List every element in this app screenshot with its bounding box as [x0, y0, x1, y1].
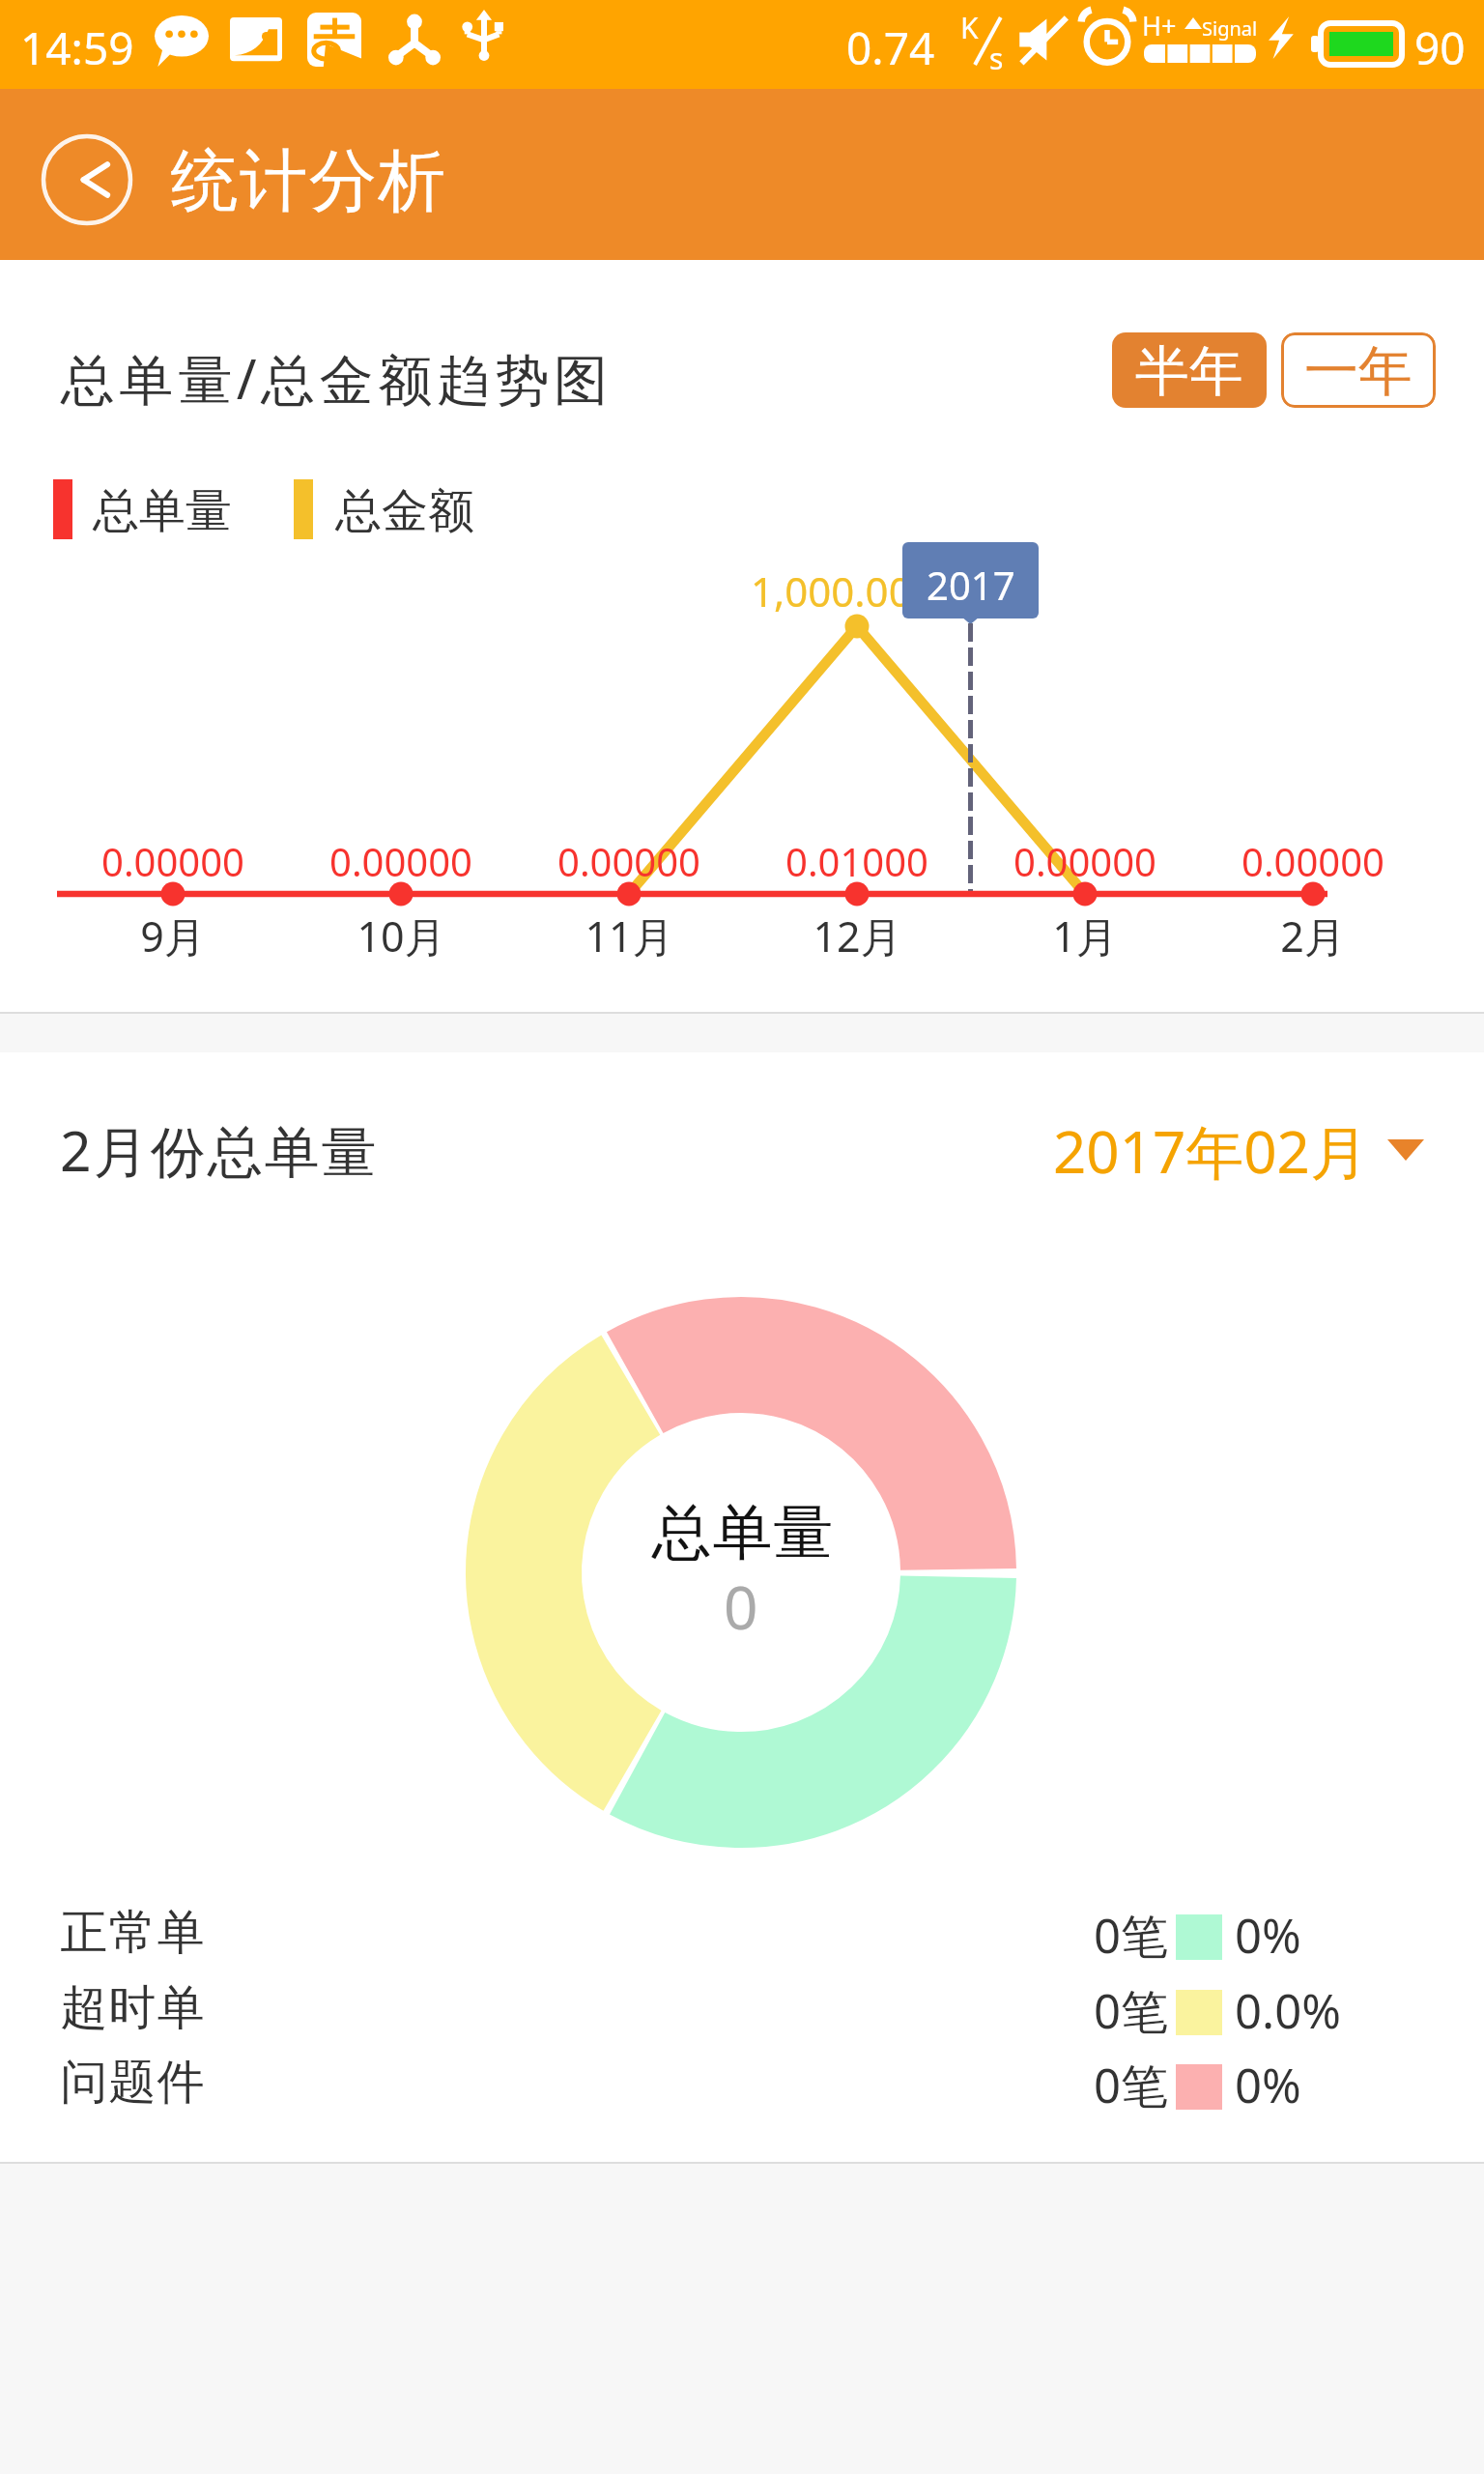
- staticText: 正常单: [60, 1903, 205, 1963]
- staticText: 0笔: [1094, 2053, 1169, 2117]
- staticText: 2月: [1280, 907, 1346, 964]
- staticText: 总单量: [651, 1495, 834, 1570]
- staticText: 0.00000: [101, 835, 244, 887]
- button[interactable]: 超时单: [39, 1972, 1411, 2044]
- staticText: 0: [724, 1566, 758, 1647]
- button[interactable]: 2017年02月: [1053, 1113, 1424, 1193]
- button[interactable]: 半年: [1112, 332, 1267, 408]
- button[interactable]: 正常单: [39, 1897, 1411, 1969]
- staticText: 0笔: [1094, 1903, 1169, 1968]
- staticText: H+: [1142, 8, 1177, 43]
- staticText: s: [989, 39, 1004, 78]
- staticText: 2017: [927, 559, 1015, 611]
- staticText: 0.01000: [785, 835, 928, 887]
- staticText: 1月: [1052, 907, 1118, 964]
- staticText: 半年: [1135, 337, 1243, 406]
- staticText: 0.00000: [1013, 835, 1156, 887]
- staticText: 问题件: [60, 2053, 205, 2113]
- staticText: 0%: [1235, 1903, 1301, 1968]
- staticText: 总金额: [335, 482, 474, 540]
- staticText: 10月: [357, 907, 446, 964]
- staticText: Signal: [1202, 15, 1258, 42]
- staticText: 9月: [140, 907, 206, 964]
- staticText: 0%: [1235, 2053, 1301, 2117]
- staticText: 0.0%: [1235, 1978, 1341, 2043]
- staticText: 总单量: [93, 482, 232, 540]
- staticText: K: [960, 8, 979, 47]
- staticText: 12月: [813, 907, 902, 964]
- button[interactable]: 一年: [1281, 332, 1436, 408]
- staticText: 2017年02月: [1053, 1111, 1368, 1191]
- staticText: 一年: [1304, 337, 1413, 406]
- staticText: 90: [1414, 17, 1466, 78]
- staticText: 超时单: [60, 1978, 205, 2038]
- staticText: 总单量/总金额趋势图: [61, 341, 613, 415]
- staticText: 0.00000: [1241, 835, 1384, 887]
- staticText: 0笔: [1094, 1978, 1169, 2043]
- staticText: 0.00000: [557, 835, 700, 887]
- staticText: 统计分析: [170, 139, 446, 224]
- staticText: 0.00000: [329, 835, 472, 887]
- staticText: 14:59: [20, 17, 134, 78]
- staticText: 11月: [585, 907, 674, 964]
- staticText: 0.74: [846, 17, 935, 78]
- button[interactable]: 问题件: [39, 2047, 1411, 2118]
- staticText: 1,000.000: [751, 563, 935, 618]
- staticText: 2月份总单量: [60, 1112, 379, 1188]
- button[interactable]: Back: [41, 133, 133, 226]
